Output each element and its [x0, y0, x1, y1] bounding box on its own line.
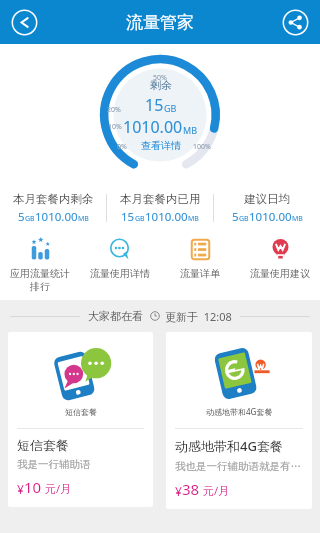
button[interactable]: 剩余	[123, 78, 198, 152]
staticText: 元/月	[45, 481, 72, 496]
staticText: 我也是一行辅助语就是有点…	[175, 460, 305, 473]
button[interactable]: Share	[282, 9, 309, 36]
staticText: ¥	[175, 483, 182, 499]
staticText: 我是一行辅助语	[17, 458, 91, 471]
button[interactable]: 本月套餐内剩余	[0, 192, 106, 225]
staticText: GB	[239, 214, 249, 224]
staticText: 建议日均	[244, 192, 290, 206]
staticText: GB	[164, 102, 177, 114]
staticText: 本月套餐内剩余	[13, 192, 94, 206]
staticText: 1010.00	[249, 209, 292, 225]
staticText: 查看详情	[141, 139, 181, 152]
staticText: ¥	[17, 481, 24, 497]
button[interactable]: 建议日均	[214, 192, 320, 225]
staticText: 本月套餐内已用	[120, 192, 201, 206]
staticText: 1010.00	[145, 209, 188, 225]
staticText: 5	[232, 209, 239, 225]
staticText: 应用流量统计 排行	[10, 267, 70, 293]
staticText: MB	[188, 214, 199, 224]
staticText: GB	[135, 214, 145, 224]
staticText: 1010.00	[35, 209, 78, 225]
staticText: 20%	[107, 105, 121, 115]
button[interactable]: Back	[11, 9, 38, 36]
staticText: MB	[292, 214, 303, 224]
staticText: 100%	[193, 142, 211, 152]
button[interactable]: 应用流量统计 排行	[0, 237, 80, 293]
staticText: 短信套餐	[17, 437, 69, 453]
staticText: 15	[145, 94, 164, 116]
staticText: 15	[121, 209, 135, 225]
staticText: 剩余	[150, 78, 172, 92]
staticText: 大家都在看	[88, 309, 143, 323]
staticText: 10%	[108, 122, 122, 132]
staticText: MB	[183, 124, 198, 136]
button[interactable]: 动感地带和4G套餐	[166, 332, 312, 509]
staticText: 5	[18, 209, 25, 225]
staticText: 50%	[153, 73, 167, 83]
staticText: 更新于 12:08	[165, 309, 232, 324]
staticText: 38	[182, 479, 200, 499]
staticText: 短信套餐	[65, 407, 97, 417]
button[interactable]: 短信套餐	[8, 332, 153, 507]
staticText: 1010.00	[123, 116, 183, 138]
staticText: 流量使用建议	[250, 267, 310, 280]
staticText: 动感地带和4G套餐	[175, 437, 283, 455]
button[interactable]: 本月套餐内已用	[107, 192, 213, 225]
staticText: 流量管家	[126, 12, 194, 33]
button[interactable]: 流量使用建议	[240, 237, 320, 280]
staticText: 0%	[117, 142, 127, 152]
staticText: MB	[78, 214, 89, 224]
staticText: 元/月	[203, 483, 230, 498]
staticText: 动感地带和4G套餐	[206, 406, 273, 417]
staticText: 流量详单	[180, 267, 220, 280]
button[interactable]: 流量使用详情	[80, 237, 160, 280]
staticText: 10	[24, 477, 42, 497]
staticText: 流量使用详情	[90, 267, 150, 280]
staticText: GB	[25, 214, 35, 224]
button[interactable]: 流量详单	[160, 237, 240, 280]
